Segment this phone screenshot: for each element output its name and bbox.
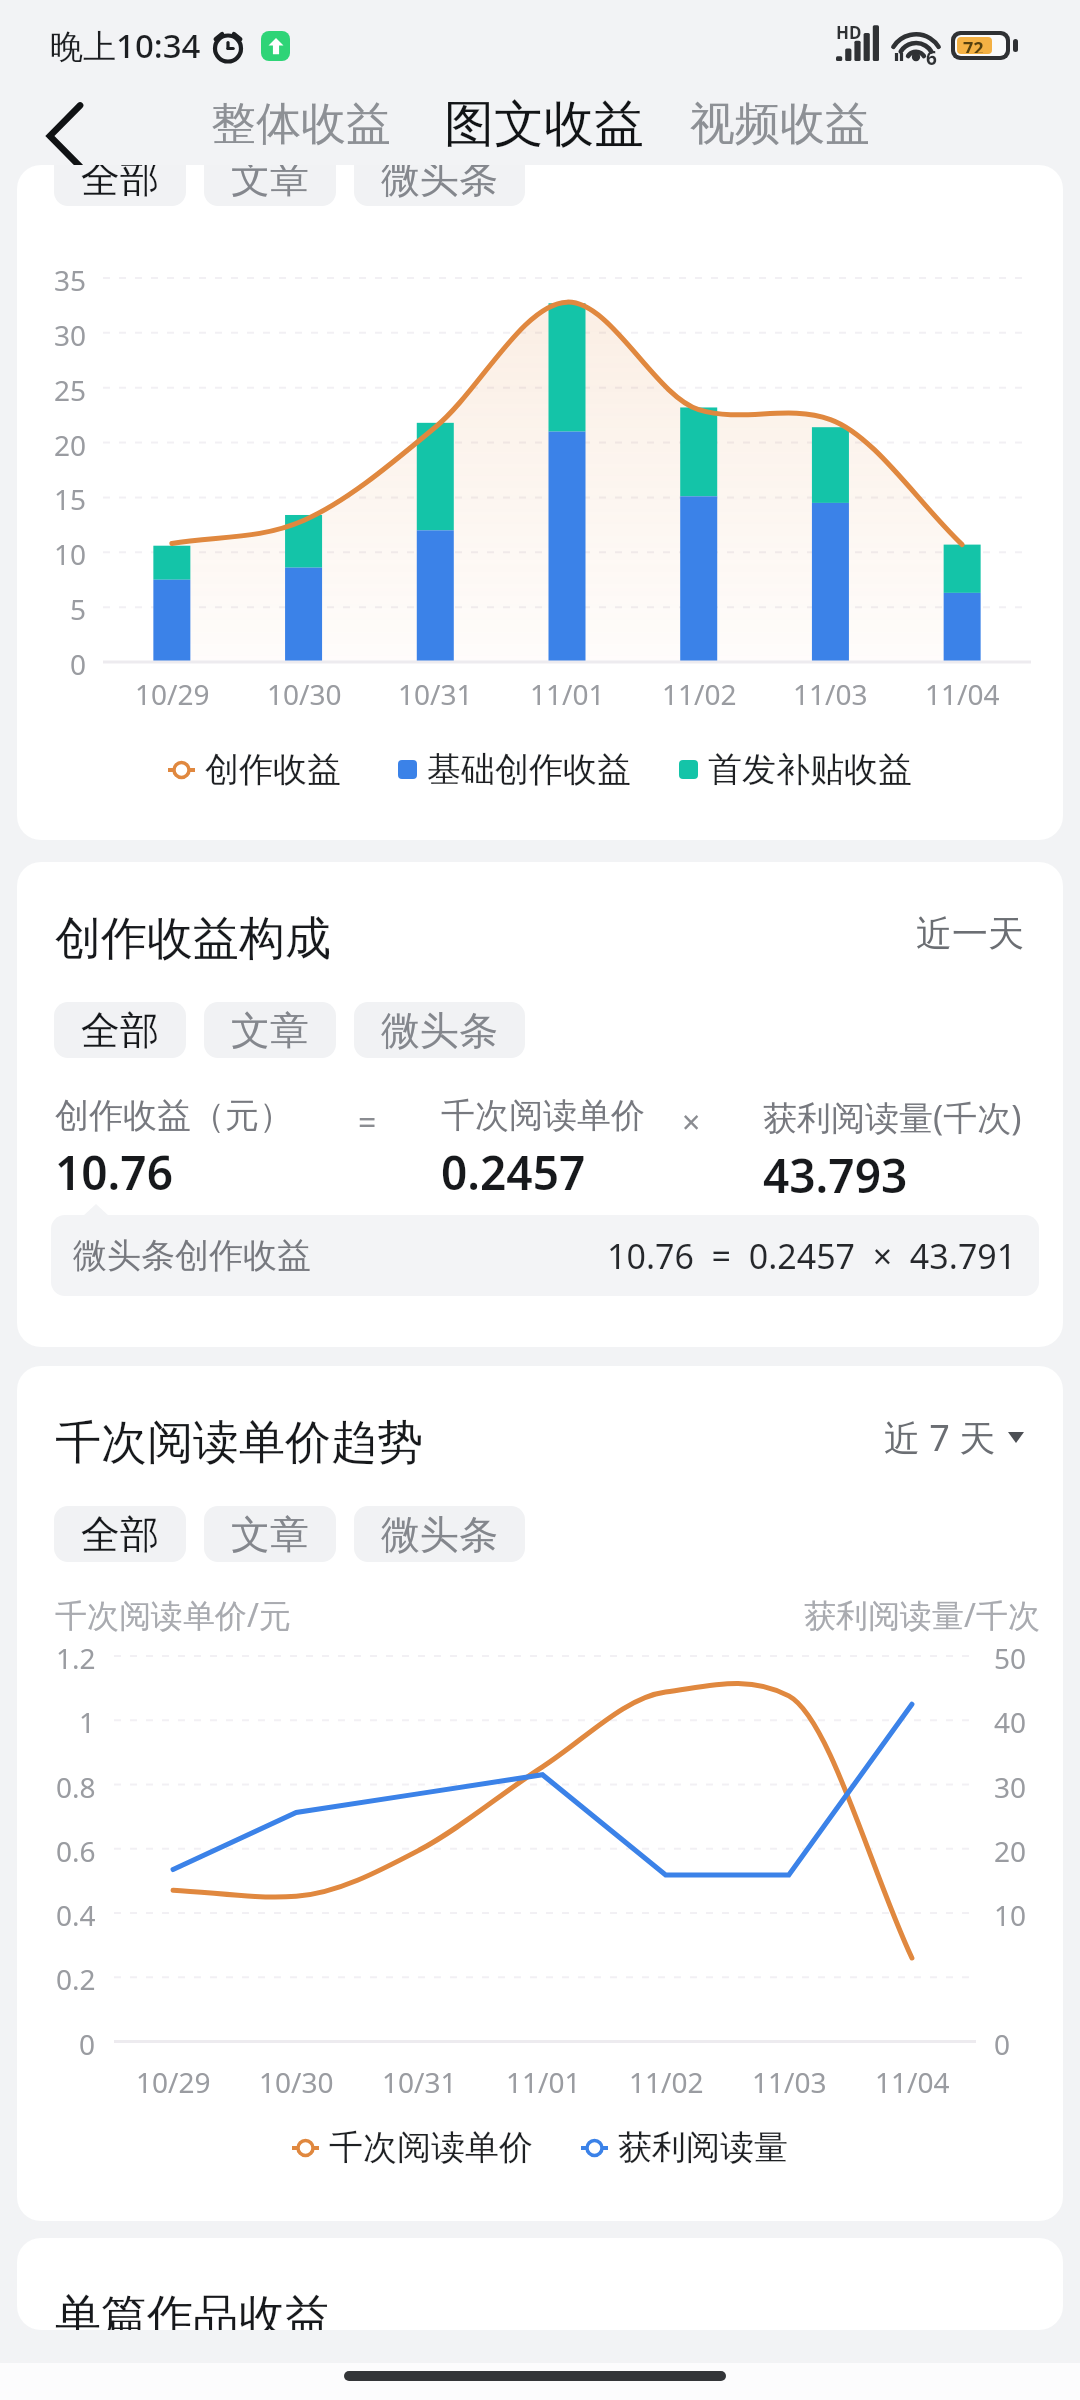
staticText: 0: [79, 2025, 96, 2063]
button[interactable]: 整体收益: [211, 96, 391, 153]
staticText: 整体收益: [211, 96, 391, 153]
staticText: 首发补贴收益: [708, 748, 912, 791]
staticText: 1: [79, 1703, 96, 1741]
staticText: 创作收益构成: [55, 910, 331, 968]
staticText: 10.76 = 0.2457 × 43.791: [607, 1233, 1017, 1279]
staticText: 11/02: [629, 2063, 704, 2101]
staticText: 11/03: [752, 2063, 827, 2101]
button[interactable]: 文章: [204, 165, 336, 206]
staticText: 全部: [81, 1510, 159, 1559]
button[interactable]: 微头条: [354, 165, 525, 206]
staticText: 图文收益: [444, 93, 644, 156]
staticText: 25: [54, 371, 87, 409]
staticText: 视频收益: [690, 96, 870, 153]
staticText: 35: [54, 261, 87, 299]
staticText: 千次阅读单价/元: [55, 1593, 291, 1637]
staticText: 微头条: [381, 1510, 498, 1559]
staticText: 30: [54, 316, 87, 354]
staticText: 72: [963, 36, 984, 53]
button[interactable]: 全部: [54, 1506, 186, 1562]
staticText: 10/30: [259, 2063, 334, 2101]
staticText: 5: [70, 590, 87, 628]
staticText: 获利阅读量/千次: [804, 1593, 1040, 1637]
staticText: 11/01: [506, 2063, 581, 2101]
button[interactable]: 文章: [204, 1506, 336, 1562]
staticText: 10.76: [55, 1141, 173, 1204]
staticText: 0.2457: [441, 1141, 586, 1204]
staticText: 0: [994, 2025, 1011, 2063]
staticText: 40: [994, 1703, 1027, 1741]
staticText: =: [358, 1100, 377, 1144]
button[interactable]: 近 7 天: [884, 1419, 1024, 1468]
button[interactable]: 微头条: [354, 1002, 525, 1058]
staticText: 0.6: [56, 1832, 96, 1870]
staticText: 千次阅读单价: [329, 2126, 533, 2169]
staticText: 6: [926, 45, 937, 71]
staticText: 43.793: [763, 1144, 908, 1207]
staticText: 30: [994, 1768, 1027, 1806]
staticText: 获利阅读量: [618, 2126, 788, 2169]
staticText: 文章: [231, 1510, 309, 1559]
staticText: 10/30: [267, 675, 342, 713]
staticText: 11/04: [875, 2063, 950, 2101]
staticText: 微头条创作收益: [73, 1234, 311, 1277]
staticText: 千次阅读单价趋势: [55, 1414, 423, 1472]
staticText: 0: [70, 645, 87, 683]
staticText: 10/29: [135, 675, 210, 713]
staticText: 近一天: [916, 911, 1024, 956]
staticText: 20: [994, 1832, 1027, 1870]
staticText: 10: [994, 1896, 1027, 1934]
button[interactable]: 视频收益: [690, 96, 870, 153]
staticText: 11/03: [793, 675, 868, 713]
staticText: 获利阅读量(千次): [763, 1094, 1022, 1140]
button[interactable]: 文章: [204, 1002, 336, 1058]
staticText: 近 7 天: [884, 1413, 996, 1462]
staticText: 文章: [231, 1006, 309, 1055]
staticText: 全部: [81, 165, 159, 203]
button[interactable]: 微头条创作收益: [51, 1215, 1039, 1296]
staticText: 0.2: [56, 1960, 96, 1998]
button[interactable]: 全部: [54, 165, 186, 206]
staticText: 全部: [81, 1006, 159, 1055]
staticText: 10/29: [136, 2063, 211, 2101]
staticText: 基础创作收益: [427, 748, 631, 791]
staticText: 千次阅读单价: [441, 1094, 645, 1137]
staticText: 创作收益: [205, 748, 341, 791]
staticText: 微头条: [381, 165, 498, 203]
staticText: ×: [682, 1100, 701, 1144]
staticText: 微头条: [381, 1006, 498, 1055]
staticText: 1.2: [56, 1639, 96, 1677]
staticText: 单篇作品收益: [55, 2288, 331, 2330]
staticText: 文章: [231, 165, 309, 203]
staticText: 10: [54, 535, 87, 573]
staticText: 15: [54, 480, 87, 518]
staticText: 11/02: [662, 675, 737, 713]
staticText: 10/31: [382, 2063, 457, 2101]
staticText: 晚上10:34: [50, 23, 201, 68]
staticText: 20: [54, 426, 87, 464]
button[interactable]: 微头条: [354, 1506, 525, 1562]
staticText: 0.4: [56, 1896, 96, 1934]
button[interactable]: 返回: [23, 97, 107, 174]
staticText: 10/31: [398, 675, 473, 713]
button[interactable]: 全部: [54, 1002, 186, 1058]
button[interactable]: 图文收益: [444, 93, 644, 156]
staticText: 0.8: [56, 1768, 96, 1806]
staticText: HD: [836, 21, 862, 44]
staticText: 创作收益（元）: [55, 1094, 293, 1137]
staticText: 11/04: [925, 675, 1000, 713]
staticText: 11/01: [530, 675, 605, 713]
staticText: 50: [994, 1639, 1027, 1677]
